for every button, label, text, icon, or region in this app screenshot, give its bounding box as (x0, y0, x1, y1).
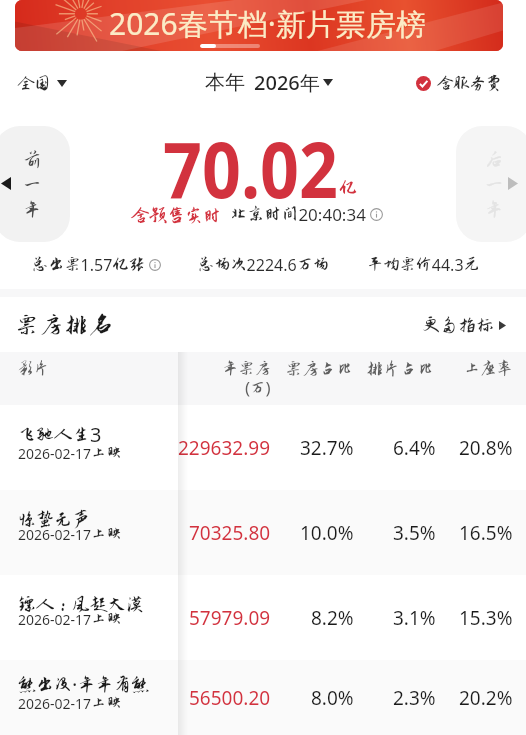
staticText: 56500.20 (189, 685, 271, 711)
staticText: 一 (23, 174, 41, 194)
staticText: 飞驰人生3 (18, 421, 102, 448)
button[interactable]: 后 (456, 126, 526, 242)
button[interactable]: 后一年 (508, 177, 518, 190)
button[interactable]: 前 (0, 126, 70, 242)
staticText: 北京时间20:40:34 (230, 203, 366, 226)
staticText: 总出票1.57亿张 (32, 254, 145, 276)
staticText: 含预售实时 (131, 205, 221, 225)
staticText: 平均票价44.3元 (367, 254, 480, 276)
staticText: 32.7% (300, 435, 354, 461)
staticText: 2026春节档·新片票房榜 (109, 3, 426, 44)
staticText: 后 (485, 149, 503, 169)
staticText: 20.8% (459, 435, 513, 461)
staticText: 6.4% (393, 435, 436, 461)
staticText: 年 (23, 199, 41, 219)
button[interactable]: 飞驰人生3 (0, 405, 526, 490)
staticText: 3.1% (393, 605, 436, 631)
staticText: 年 (485, 199, 503, 219)
staticText: 20.2% (459, 685, 513, 711)
staticText: 年票房 (222, 359, 271, 377)
staticText: 总场次2224.6万场 (198, 254, 330, 276)
staticText: (万) (245, 376, 271, 399)
staticText: 影片 (17, 359, 50, 377)
staticText: 全国 (18, 74, 51, 92)
staticText: 票房排名 (15, 312, 114, 338)
button[interactable]: 镖人：风起大漠 (0, 575, 526, 660)
staticText: 8.2% (311, 605, 354, 631)
staticText: 一 (485, 174, 503, 194)
button[interactable]: 更多指标 (422, 315, 506, 335)
staticText: 16.5% (459, 520, 513, 546)
staticText: 2026-02-17上映 (18, 694, 122, 713)
staticText: 亿 (339, 177, 357, 197)
button[interactable]: 熊出没·年年有熊 (0, 660, 526, 735)
staticText: 2026-02-17上映 (18, 610, 122, 629)
staticText: 57979.09 (189, 605, 271, 631)
staticText: 10.0% (300, 520, 354, 546)
staticText: 本年 (205, 70, 245, 95)
staticText: 70.02 (163, 116, 338, 221)
staticText: 2026-02-17上映 (18, 525, 122, 544)
staticText: 含服务费 (437, 74, 502, 92)
staticText: 15.3% (459, 605, 513, 631)
staticText: 惊蛰无声 (18, 509, 90, 529)
staticText: 前 (23, 149, 41, 169)
staticText: 70325.80 (189, 520, 271, 546)
staticText: 镖人：风起大漠 (18, 594, 144, 614)
button[interactable]: 含服务费 (416, 74, 502, 92)
staticText: 排片占比 (366, 359, 435, 378)
button[interactable]: 2026春节档·新片票房榜 (15, 0, 503, 51)
button[interactable]: 本年 (205, 69, 333, 96)
button[interactable]: 全国 (18, 74, 67, 92)
staticText: 2.3% (393, 685, 436, 711)
staticText: 更多指标 (422, 315, 494, 335)
staticText: 3.5% (393, 520, 436, 546)
button[interactable]: 惊蛰无声 (0, 490, 526, 575)
staticText: 229632.99 (178, 435, 271, 461)
button[interactable]: 前一年 (1, 177, 11, 190)
staticText: 2026年 (254, 69, 320, 96)
staticText: 上座率 (464, 359, 513, 377)
staticText: 熊出没·年年有熊 (18, 671, 150, 698)
staticText: 2026-02-17上映 (18, 444, 122, 463)
staticText: 8.0% (311, 685, 354, 711)
staticText: 票房占比 (285, 359, 354, 378)
